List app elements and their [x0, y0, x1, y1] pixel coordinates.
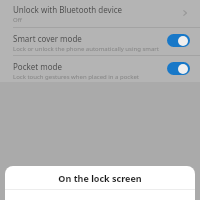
staticText: Off [13, 16, 22, 24]
staticText: Pocket mode [13, 61, 63, 72]
staticText: Lock touch gestures when placed in a poc… [13, 73, 139, 81]
staticText: On the lock screen [58, 172, 142, 184]
staticText: Smart cover mode [13, 33, 82, 44]
button[interactable]: Toggle [167, 34, 190, 47]
button[interactable]: Pocket mode [0, 56, 200, 82]
staticText: Unlock with Bluetooth device [13, 4, 123, 15]
other: Open [178, 6, 192, 20]
staticText: Lock or unlock the phone automatically u… [13, 45, 163, 55]
button[interactable]: Toggle [167, 62, 190, 75]
button[interactable]: Smart cover mode [0, 28, 200, 55]
button[interactable]: Unlock with Bluetooth device [0, 0, 200, 27]
